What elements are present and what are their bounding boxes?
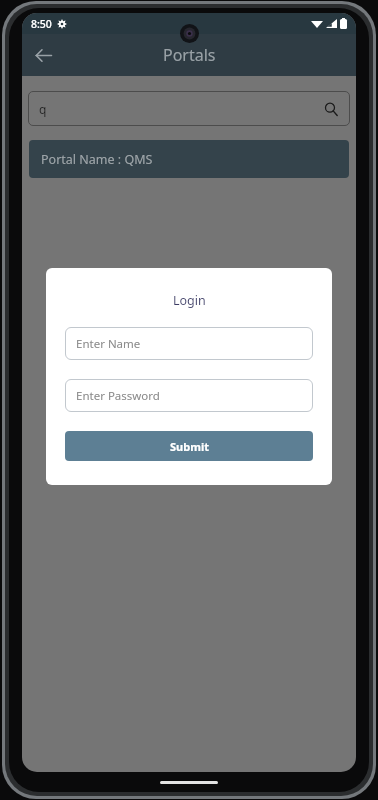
staticText: Enter Password xyxy=(76,388,160,404)
button[interactable]: q xyxy=(28,91,350,126)
staticText: q xyxy=(39,101,47,117)
button[interactable]: Enter Password xyxy=(65,379,313,412)
button[interactable]: Enter Name xyxy=(65,327,313,360)
button[interactable]: Portal Name : QMS xyxy=(29,140,349,178)
button[interactable]: Submit xyxy=(65,431,313,461)
staticText: Login xyxy=(173,292,206,309)
staticText: Portals xyxy=(163,44,216,66)
staticText: Enter Name xyxy=(76,336,141,352)
button[interactable]: Back xyxy=(26,38,60,72)
other: Search xyxy=(322,100,340,118)
staticText: Submit xyxy=(170,439,209,454)
staticText: 8:50 xyxy=(31,17,52,31)
staticText: Portal Name : QMS xyxy=(41,151,153,168)
